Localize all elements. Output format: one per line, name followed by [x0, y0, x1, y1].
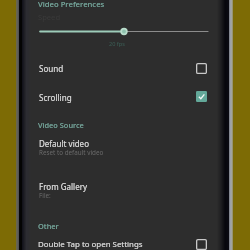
staticText: Default video: [39, 138, 89, 149]
staticText: Sound: [39, 63, 64, 74]
staticText: Other: [38, 221, 59, 231]
staticText: Double Tap to open Settings: [38, 239, 143, 250]
button[interactable]: Scrolling setting: [22, 86, 219, 106]
button[interactable]: From Gallery: [22, 178, 219, 202]
button[interactable]: Default video: [22, 136, 219, 160]
button[interactable]: Enabled checkbox: [196, 91, 207, 102]
staticText: 20 fps: [109, 40, 125, 48]
button[interactable]: Disabled checkbox: [196, 63, 207, 74]
staticText: Video Source: [38, 120, 84, 130]
button[interactable]: Speed slider: [38, 27, 212, 36]
button[interactable]: Disabled checkbox: [196, 239, 207, 250]
button[interactable]: Sound setting: [22, 58, 219, 78]
staticText: Scrolling: [39, 92, 72, 103]
button[interactable]: Double Tap to open Settings: [22, 235, 219, 250]
staticText: Reset to default video: [39, 148, 104, 157]
staticText: Video Preferences: [38, 0, 105, 9]
staticText: File:: [39, 191, 51, 200]
staticText: From Gallery: [39, 181, 88, 192]
